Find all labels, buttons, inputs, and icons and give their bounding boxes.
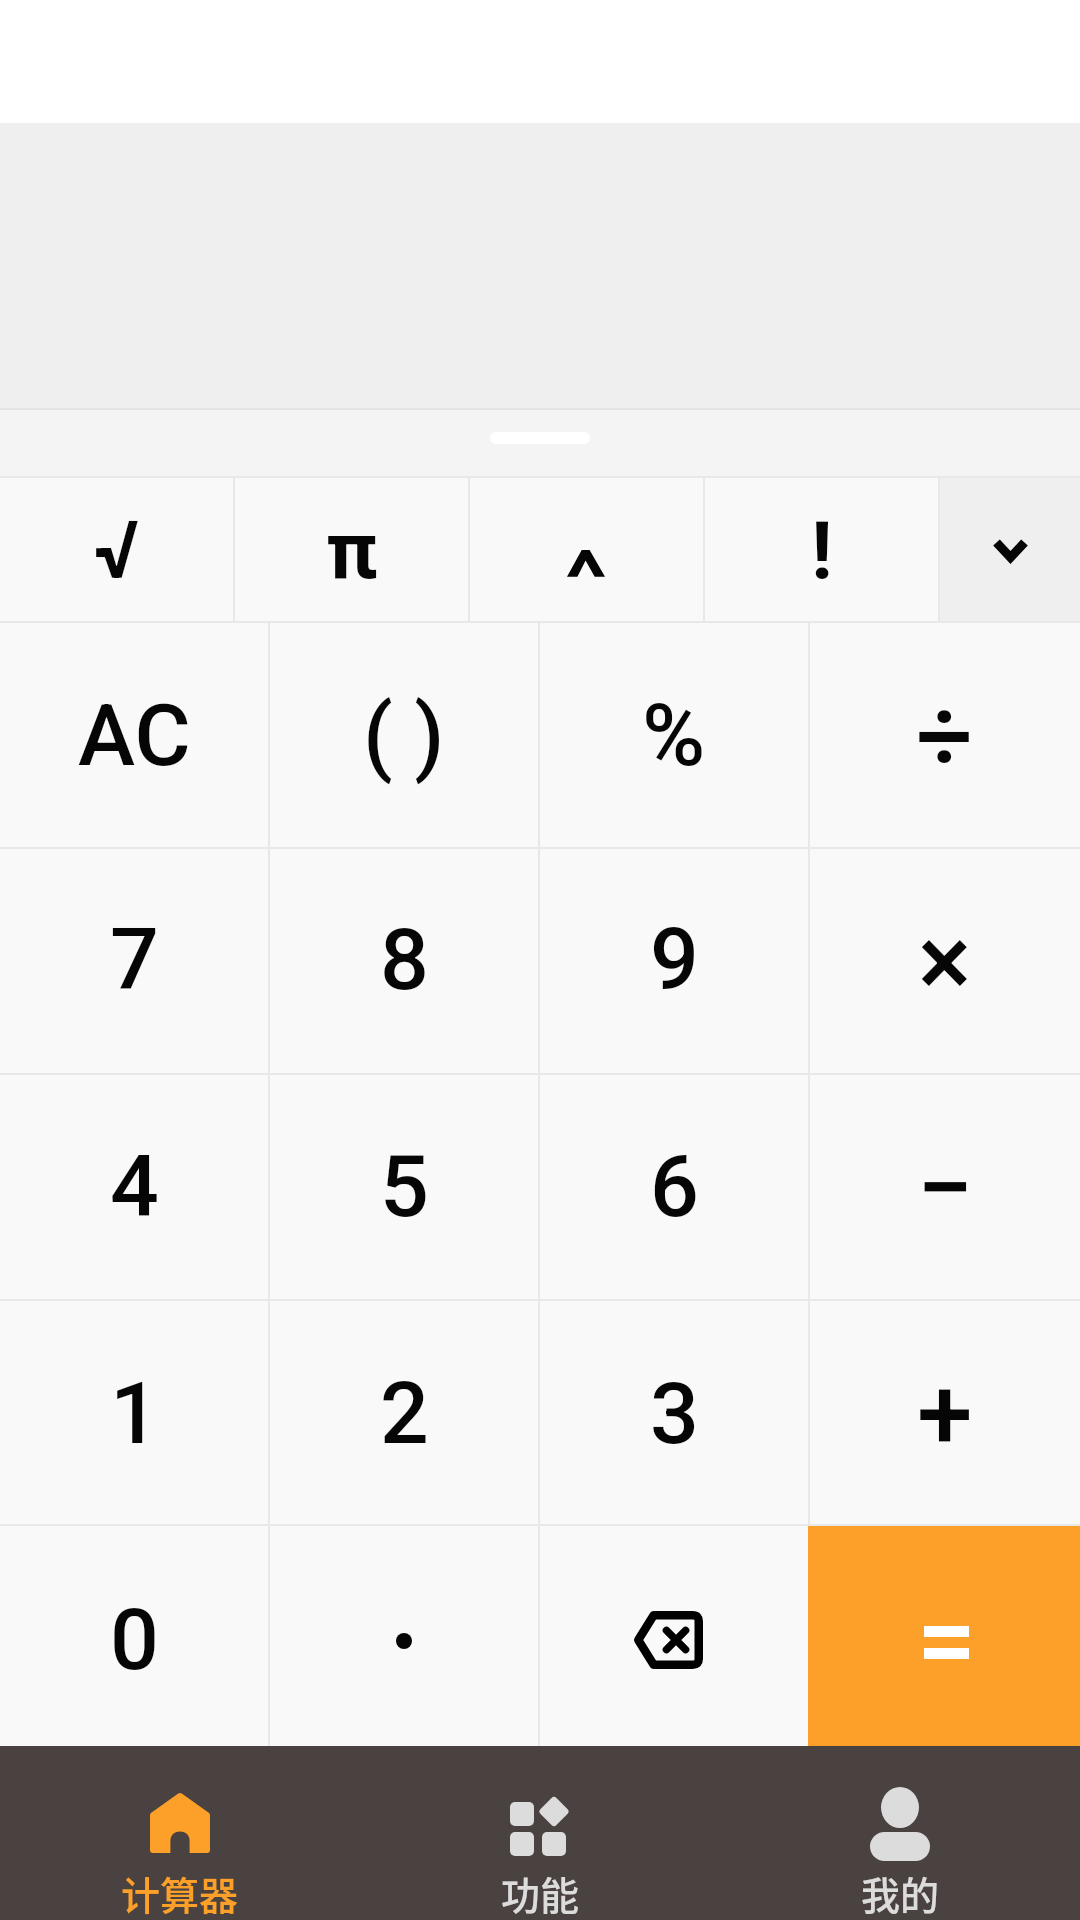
staticText: 2 xyxy=(380,1363,429,1464)
button[interactable]: 4 xyxy=(0,1075,268,1299)
button[interactable]: 2 xyxy=(270,1301,538,1524)
staticText: − xyxy=(917,1129,974,1246)
staticText: π xyxy=(326,504,378,598)
staticText: 4 xyxy=(110,1136,159,1237)
button[interactable] xyxy=(470,478,703,621)
staticText: 计算器 xyxy=(121,1865,239,1920)
button[interactable]: 6 xyxy=(540,1075,808,1299)
staticText: 5 xyxy=(380,1136,429,1237)
staticText: AC xyxy=(78,685,191,786)
button[interactable]: 功能 xyxy=(360,1746,720,1920)
button[interactable]: ! xyxy=(705,478,938,621)
staticText: 我的 xyxy=(861,1865,940,1920)
staticText: 3 xyxy=(650,1363,699,1464)
button[interactable]: 0 xyxy=(0,1526,268,1746)
staticText: 0 xyxy=(110,1589,159,1690)
button[interactable]: + xyxy=(810,1301,1080,1524)
staticText: √ xyxy=(94,504,139,598)
button[interactable]: × xyxy=(810,849,1080,1073)
button[interactable]: 我的 xyxy=(720,1746,1080,1920)
button[interactable]: π xyxy=(235,478,468,621)
button[interactable]: 8 xyxy=(270,849,538,1073)
button[interactable]: % xyxy=(540,623,808,847)
button[interactable]: 计算器 xyxy=(0,1746,360,1920)
button[interactable]: ÷ xyxy=(810,623,1080,847)
staticText: 功能 xyxy=(501,1865,580,1920)
button[interactable]: − xyxy=(810,1075,1080,1299)
button[interactable]: 3 xyxy=(540,1301,808,1524)
button[interactable]: 5 xyxy=(270,1075,538,1299)
staticText: ÷ xyxy=(916,677,974,794)
button[interactable]: √ xyxy=(0,478,233,621)
button[interactable]: 1 xyxy=(0,1301,268,1524)
button[interactable]: AC xyxy=(0,623,268,847)
button[interactable]: Decimal point xyxy=(270,1526,538,1746)
button[interactable]: Backspace xyxy=(540,1526,808,1746)
staticText: 7 xyxy=(110,909,159,1010)
staticText: 1 xyxy=(110,1363,159,1464)
button[interactable]: ( ) xyxy=(270,623,538,847)
button[interactable]: 7 xyxy=(0,849,268,1073)
staticText: ( ) xyxy=(363,685,445,786)
staticText: ! xyxy=(811,504,833,598)
button[interactable]: Equals xyxy=(808,1526,1080,1746)
staticText: 8 xyxy=(380,909,429,1010)
staticText: × xyxy=(918,903,972,1020)
button[interactable]: 9 xyxy=(540,849,808,1073)
staticText: 6 xyxy=(650,1136,699,1237)
staticText: 9 xyxy=(650,909,699,1010)
staticText: + xyxy=(917,1355,973,1472)
staticText: % xyxy=(642,685,706,786)
button[interactable]: Collapse keypad xyxy=(940,478,1080,621)
